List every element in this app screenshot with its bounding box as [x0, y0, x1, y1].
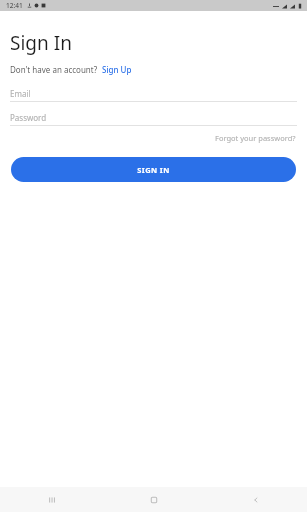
button[interactable]: Email [0, 86, 307, 101]
staticText: SIGN IN [137, 165, 170, 175]
staticText: Password [10, 112, 47, 123]
staticText: Don't have an account? [10, 64, 98, 75]
staticText: Sign In [10, 30, 72, 56]
staticText: Email [10, 88, 31, 99]
staticText: 12:41 [6, 1, 23, 10]
button[interactable]: Home [103, 487, 205, 512]
button[interactable]: Forgot your password? [215, 132, 296, 144]
button[interactable]: Sign Up [102, 64, 132, 75]
staticText: Sign Up [102, 64, 132, 75]
staticText: Forgot your password? [215, 133, 296, 143]
button[interactable]: SIGN IN [11, 157, 296, 182]
button[interactable]: Recent apps [0, 487, 103, 512]
button[interactable]: Password [0, 110, 307, 125]
